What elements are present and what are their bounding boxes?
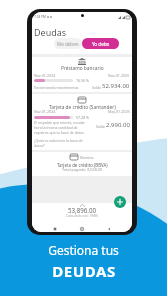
staticText: Saldo: [96, 124, 105, 129]
button[interactable]: Me deben: [54, 38, 82, 49]
staticText: Saldo: [92, 85, 101, 90]
staticText: Tarjeta de crédito (BBVA): [57, 162, 108, 168]
button[interactable]: Agregar deuda: [114, 196, 126, 208]
staticText: DEUDAS: [52, 261, 116, 281]
button[interactable]: Tarjeta de crédito (Santander): [32, 94, 132, 150]
staticText: Encontrando movimientos: [34, 85, 79, 90]
staticText: 16.56 %: [76, 78, 90, 83]
staticText: Nov-01-2024: [34, 73, 56, 78]
button[interactable]: Recientes: [51, 225, 59, 232]
staticText: ¿Quieres sobrevivir la base de datos?: [34, 138, 83, 148]
staticText: 52,934.00: [102, 82, 130, 90]
button[interactable]: Inicio: [78, 225, 86, 232]
staticText: 57.28 %: [76, 115, 90, 120]
staticText: Me deben: [57, 41, 79, 47]
button[interactable]: Préstamo bancario: [32, 57, 132, 92]
staticText: Deudas: [34, 26, 67, 38]
staticText: 2,990.00: [106, 121, 130, 129]
staticText: Tarjeta de crédito (Santander): [49, 104, 116, 111]
staticText: Préstamo bancario: [61, 65, 104, 72]
button[interactable]: Yo debo: [82, 38, 119, 49]
staticText: Nov-01-2024: [34, 109, 56, 114]
staticText: May-01-2025: [108, 109, 130, 114]
staticText: 53,896.00: [68, 206, 97, 214]
button[interactable]: Atrás: [105, 225, 113, 232]
button[interactable]: Nomina: [32, 152, 132, 176]
staticText: Nov-01-2025: [108, 73, 130, 78]
staticText: Calculado con: YNM: [66, 213, 98, 218]
staticText: Nomina: [80, 155, 94, 160]
staticText: El respaldo que interés, escalar hora la…: [34, 120, 85, 135]
staticText: 7:34 PM: [34, 15, 46, 19]
staticText: Yo debo: [92, 41, 110, 47]
staticText: Total pagado: 8,028.00: [62, 167, 103, 172]
staticText: Gestiona tus: [48, 242, 119, 258]
